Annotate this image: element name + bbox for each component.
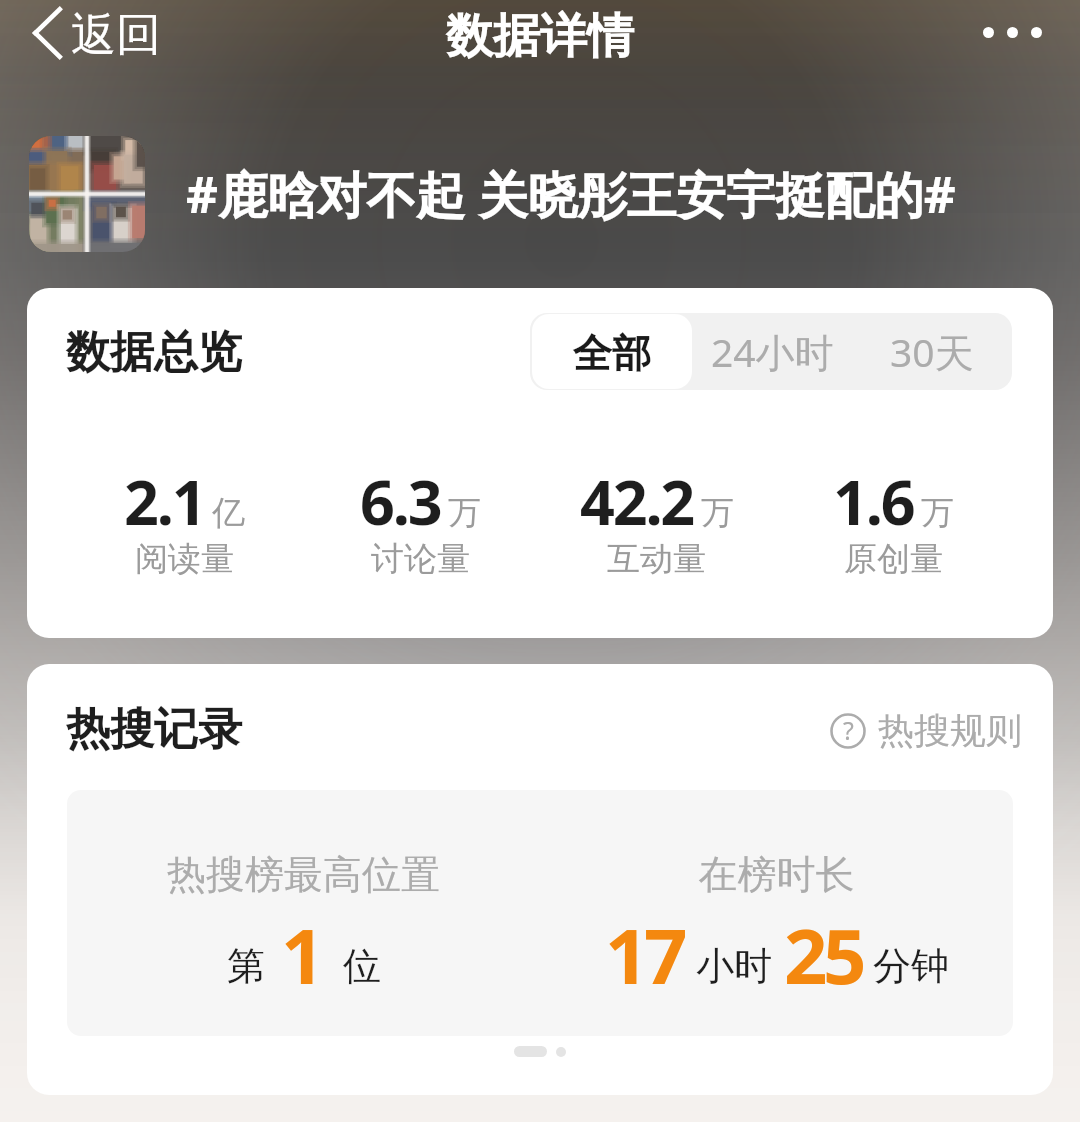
staticText: 热搜规则 bbox=[878, 708, 1022, 753]
staticText: 互动量 bbox=[607, 538, 706, 580]
staticText: 1 bbox=[281, 903, 325, 1007]
button[interactable]: 全部 bbox=[532, 314, 692, 389]
staticText: 万 bbox=[701, 492, 734, 534]
staticText: #鹿晗对不起 关晓彤王安宇挺配的# bbox=[186, 160, 956, 228]
staticText: 小时 bbox=[696, 942, 772, 990]
staticText: 30天 bbox=[890, 325, 974, 378]
staticText: 亿 bbox=[212, 492, 245, 534]
staticText: 数据总览 bbox=[66, 325, 242, 380]
staticText: 2.1 bbox=[124, 460, 205, 543]
staticText: 位 bbox=[343, 942, 381, 990]
staticText: 热搜榜最高位置 bbox=[67, 850, 540, 899]
staticText: 返回 bbox=[71, 7, 161, 59]
staticText: 讨论量 bbox=[371, 538, 470, 580]
staticText: 1.6 bbox=[833, 460, 914, 543]
staticText: 17 bbox=[605, 903, 683, 1007]
staticText: 数据详情 bbox=[446, 7, 634, 66]
button[interactable]: 返回 bbox=[25, 0, 169, 64]
staticText: 原创量 bbox=[844, 538, 943, 580]
button[interactable]: More options bbox=[969, 9, 1056, 56]
staticText: 全部 bbox=[573, 329, 651, 378]
staticText: 第 bbox=[227, 942, 265, 990]
staticText: 25 bbox=[784, 903, 862, 1007]
staticText: 热搜记录 bbox=[66, 702, 242, 757]
button[interactable]: 24小时 bbox=[694, 313, 851, 390]
staticText: 6.3 bbox=[360, 460, 441, 543]
button[interactable]: ? bbox=[818, 698, 1034, 763]
staticText: 24小时 bbox=[711, 325, 834, 378]
staticText: ? bbox=[843, 713, 854, 747]
staticText: 阅读量 bbox=[135, 538, 234, 580]
staticText: 万 bbox=[448, 492, 481, 534]
staticText: 在榜时长 bbox=[540, 850, 1013, 899]
staticText: 分钟 bbox=[873, 942, 949, 990]
staticText: 42.2 bbox=[580, 460, 694, 543]
staticText: 万 bbox=[921, 492, 954, 534]
button[interactable]: 30天 bbox=[851, 313, 1012, 390]
button[interactable]: Topic image bbox=[29, 136, 145, 252]
